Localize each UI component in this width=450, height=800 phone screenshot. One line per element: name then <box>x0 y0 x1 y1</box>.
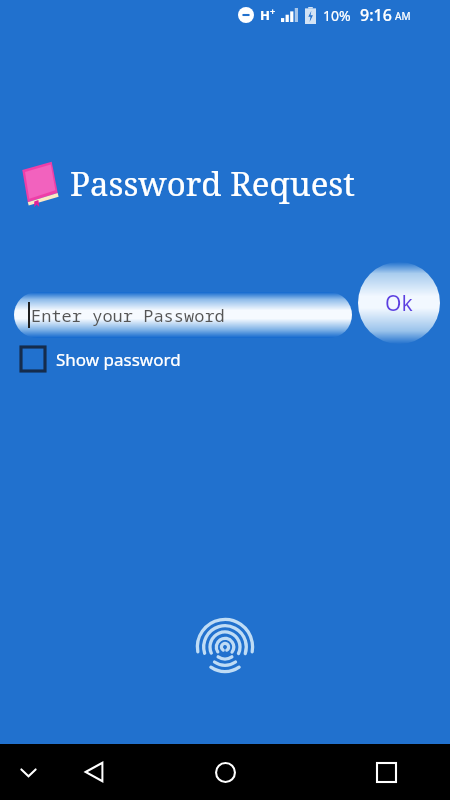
staticText: AM <box>395 9 411 23</box>
button[interactable]: Ok <box>358 262 440 344</box>
staticText: + <box>270 5 276 17</box>
button[interactable]: Back <box>72 750 116 794</box>
button[interactable]: Enter your Password <box>14 292 352 338</box>
button[interactable]: Home <box>203 750 247 794</box>
staticText: 10% <box>323 6 351 25</box>
staticText: H <box>260 6 270 24</box>
staticText: Password Request <box>70 161 355 206</box>
staticText: 9:16 <box>360 4 392 26</box>
staticText: Show password <box>56 348 181 371</box>
staticText: Ok <box>385 289 413 318</box>
button[interactable]: Recent apps <box>364 750 408 794</box>
button[interactable]: Fingerprint unlock <box>195 614 255 674</box>
button[interactable]: Hide keyboard <box>8 752 48 792</box>
staticText: Enter your Password <box>31 304 225 327</box>
button[interactable]: Show password <box>16 341 191 377</box>
